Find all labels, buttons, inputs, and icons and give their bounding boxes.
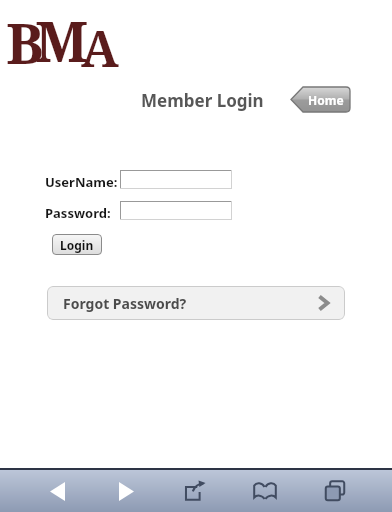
button[interactable] bbox=[120, 201, 232, 220]
staticText: Home bbox=[308, 92, 344, 108]
staticText: Password: bbox=[45, 204, 111, 222]
button[interactable]: Forgot Password? bbox=[47, 286, 345, 320]
button[interactable]: Login bbox=[52, 234, 102, 255]
staticText: Login bbox=[60, 237, 94, 253]
button[interactable]: Forward bbox=[105, 470, 147, 512]
button[interactable]: Back bbox=[36, 470, 78, 512]
staticText: Member Login bbox=[141, 89, 264, 112]
button[interactable]: Home bbox=[291, 86, 350, 113]
button[interactable]: Share bbox=[174, 470, 216, 512]
staticText: M bbox=[35, 2, 89, 68]
staticText: B bbox=[6, 4, 44, 70]
button[interactable]: Tabs bbox=[314, 470, 356, 512]
staticText: Forgot Password? bbox=[63, 294, 187, 313]
button[interactable]: Bookmarks bbox=[244, 470, 286, 512]
staticText: A bbox=[81, 14, 119, 80]
button[interactable] bbox=[120, 170, 232, 189]
staticText: UserName: bbox=[45, 173, 118, 191]
